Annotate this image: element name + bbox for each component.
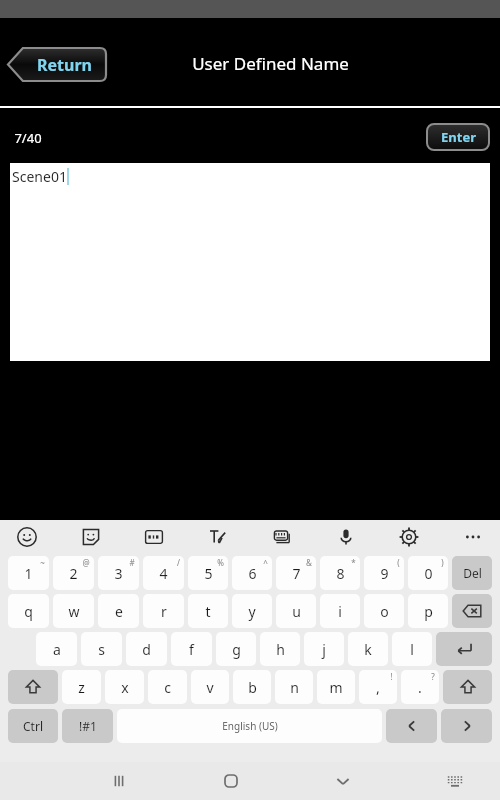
button[interactable]: l	[392, 632, 432, 666]
button[interactable]: f	[171, 632, 212, 666]
staticText: w	[68, 602, 80, 621]
button[interactable]: English (US)	[117, 709, 382, 743]
button[interactable]: q	[8, 594, 49, 628]
button[interactable]: More options	[460, 524, 486, 550]
button[interactable]: 5	[188, 556, 228, 590]
staticText: ,	[376, 678, 380, 697]
button[interactable]: d	[126, 632, 167, 666]
button[interactable]: Shift	[443, 670, 492, 704]
button[interactable]: 8	[320, 556, 360, 590]
staticText: User Defined Name	[192, 52, 349, 75]
staticText: 4	[159, 564, 168, 583]
button[interactable]: o	[364, 594, 404, 628]
staticText: Del	[463, 565, 482, 581]
staticText: f	[189, 640, 194, 659]
button[interactable]: .	[401, 670, 439, 704]
staticText: g	[232, 640, 241, 659]
staticText: o	[380, 602, 389, 621]
staticText: j	[322, 640, 326, 659]
button[interactable]: j	[304, 632, 344, 666]
button[interactable]: x	[105, 670, 144, 704]
staticText: y	[248, 602, 256, 621]
button[interactable]: a	[36, 632, 77, 666]
staticText: i	[338, 602, 342, 621]
button[interactable]: ,	[359, 670, 397, 704]
button[interactable]: !#1	[62, 709, 113, 743]
button[interactable]: Shift	[8, 670, 58, 704]
button[interactable]: Del	[452, 556, 492, 590]
button[interactable]: w	[53, 594, 94, 628]
staticText: s	[98, 640, 105, 659]
staticText: 0	[424, 564, 433, 583]
button[interactable]: Home	[211, 762, 251, 800]
button[interactable]: 2	[53, 556, 94, 590]
button[interactable]: p	[408, 594, 448, 628]
button[interactable]: b	[233, 670, 271, 704]
staticText: p	[424, 602, 433, 621]
button[interactable]: 0	[408, 556, 448, 590]
staticText: 5	[204, 564, 213, 583]
staticText: #	[129, 557, 135, 568]
button[interactable]: z	[62, 670, 101, 704]
button[interactable]: Backspace	[452, 594, 492, 628]
button[interactable]: t	[188, 594, 228, 628]
staticText: English (US)	[222, 719, 278, 733]
button[interactable]: 1	[8, 556, 49, 590]
button[interactable]: 7	[276, 556, 316, 590]
button[interactable]: Next	[441, 709, 492, 743]
button[interactable]: y	[232, 594, 272, 628]
button[interactable]: n	[275, 670, 313, 704]
button[interactable]: u	[276, 594, 316, 628]
button[interactable]: Hide keyboard	[323, 762, 363, 800]
staticText: a	[53, 640, 61, 659]
staticText: 9	[380, 564, 389, 583]
button[interactable]: Previous	[386, 709, 437, 743]
staticText: 7	[292, 564, 301, 583]
button[interactable]: h	[260, 632, 300, 666]
button[interactable]: Voice input	[333, 524, 359, 550]
button[interactable]: i	[320, 594, 360, 628]
button[interactable]: r	[143, 594, 184, 628]
button[interactable]: g	[216, 632, 256, 666]
staticText: !#1	[79, 718, 97, 734]
button[interactable]: Translate	[269, 524, 295, 550]
staticText: q	[24, 602, 33, 621]
button[interactable]: Return	[8, 48, 106, 81]
button[interactable]: s	[81, 632, 122, 666]
button[interactable]: 4	[143, 556, 184, 590]
button[interactable]: k	[348, 632, 388, 666]
button[interactable]: GIF	[141, 524, 167, 550]
staticText: x	[121, 678, 129, 697]
button[interactable]: c	[148, 670, 187, 704]
staticText: d	[142, 640, 151, 659]
button[interactable]: Enter	[427, 124, 489, 150]
staticText: b	[248, 678, 257, 697]
staticText: %	[217, 557, 224, 568]
button[interactable]: Handwriting	[205, 524, 231, 550]
staticText: Enter	[441, 128, 476, 146]
button[interactable]: 9	[364, 556, 404, 590]
button[interactable]: v	[191, 670, 229, 704]
button[interactable]: Switch keyboard	[435, 762, 475, 800]
staticText: u	[292, 602, 301, 621]
button[interactable]: Stickers	[78, 524, 104, 550]
button[interactable]: Settings	[396, 524, 422, 550]
button[interactable]: Enter	[436, 632, 492, 666]
button[interactable]: 6	[232, 556, 272, 590]
staticText: k	[364, 640, 372, 659]
staticText: Return	[37, 54, 92, 76]
button[interactable]: m	[317, 670, 355, 704]
button[interactable]: e	[98, 594, 139, 628]
button[interactable]: Recents	[99, 762, 139, 800]
staticText: ~	[40, 557, 45, 568]
button[interactable]: 3	[98, 556, 139, 590]
staticText: h	[276, 640, 285, 659]
staticText: m	[329, 678, 343, 697]
staticText: /	[177, 557, 180, 568]
button[interactable]: Emoji	[14, 524, 40, 550]
staticText: e	[115, 602, 123, 621]
staticText: ^	[263, 557, 268, 568]
button[interactable]: Ctrl	[8, 709, 58, 743]
staticText: 7/40	[14, 129, 42, 147]
staticText: )	[441, 557, 444, 568]
